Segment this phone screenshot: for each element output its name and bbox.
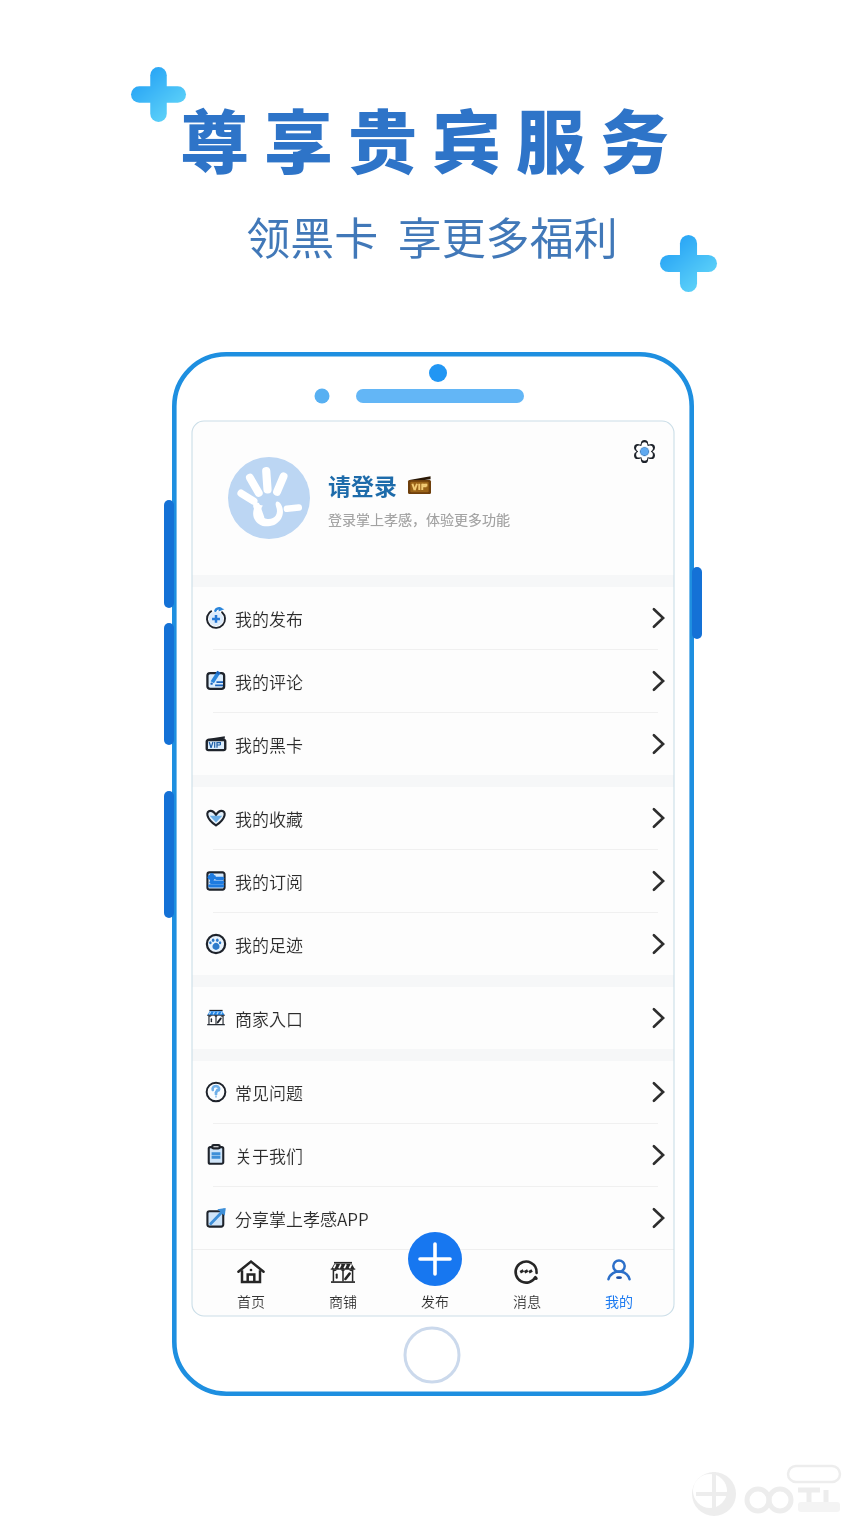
staticText: 登录掌上孝感，体验更多功能 [328,509,510,529]
button[interactable]: 我的足迹 [192,913,674,975]
staticText: 尊享贵宾服务 [0,88,864,188]
button[interactable]: 常见问题 [192,1061,674,1123]
button[interactable]: 我的订阅 [192,850,674,912]
staticText: 常见问题 [235,1080,303,1105]
button[interactable]: 关于我们 [192,1124,674,1186]
button[interactable]: 首页 [204,1249,297,1316]
button[interactable]: 我的 [573,1249,665,1316]
button[interactable]: 分享掌上孝感APP [192,1187,674,1249]
button[interactable]: 商铺 [297,1249,389,1316]
staticText: 我的足迹 [235,932,303,957]
staticText: 消息 [513,1291,541,1311]
button[interactable]: 商家入口 [192,987,674,1049]
button[interactable]: 消息 [481,1249,573,1316]
button[interactable]: 我的黑卡 [192,713,674,775]
button[interactable]: 我的收藏 [192,787,674,849]
staticText: 商铺 [329,1291,357,1311]
staticText: 发布 [421,1291,449,1311]
button[interactable]: 我的评论 [192,650,674,712]
staticText: 我的 [605,1291,633,1311]
staticText: 首页 [237,1291,265,1311]
staticText: 我的黑卡 [235,732,303,757]
staticText: 请登录 [328,468,397,501]
button[interactable]: 发布 [408,1232,462,1286]
staticText: 我的评论 [235,669,303,694]
staticText: 商家入口 [235,1006,303,1031]
staticText: 我的发布 [235,606,303,631]
button[interactable]: Settings [627,434,661,468]
staticText: 我的订阅 [235,869,303,894]
button[interactable]: 我的发布 [192,587,674,649]
staticText: 领黑卡 享更多福利 [0,204,864,268]
staticText: 我的收藏 [235,806,303,831]
staticText: 关于我们 [235,1143,303,1168]
staticText: 分享掌上孝感APP [235,1206,369,1231]
button[interactable]: 发布 [389,1249,481,1316]
